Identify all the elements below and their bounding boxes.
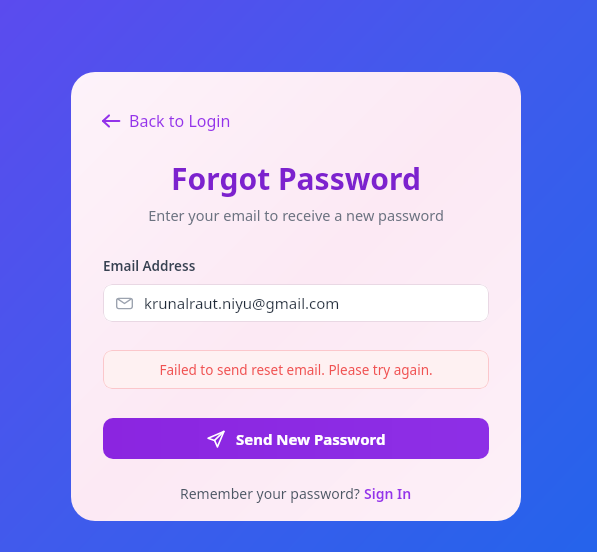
staticText: Send New Password — [236, 429, 386, 449]
staticText: Back to Login — [129, 110, 231, 132]
staticText: Failed to send reset email. Please try a… — [159, 361, 433, 379]
staticText: Enter your email to receive a new passwo… — [71, 205, 521, 225]
staticText: Email Address — [103, 257, 196, 275]
button[interactable]: Send New Password — [103, 418, 489, 459]
staticText: Sign In — [364, 484, 412, 503]
button[interactable]: krunalraut.niyu@gmail.com — [103, 284, 489, 322]
staticText: krunalraut.niyu@gmail.com — [144, 293, 340, 313]
staticText: Remember your password? — [180, 484, 364, 503]
button[interactable]: Back to Login — [97, 106, 235, 136]
button[interactable]: Sign In — [364, 484, 412, 503]
staticText: Forgot Password — [71, 158, 521, 199]
